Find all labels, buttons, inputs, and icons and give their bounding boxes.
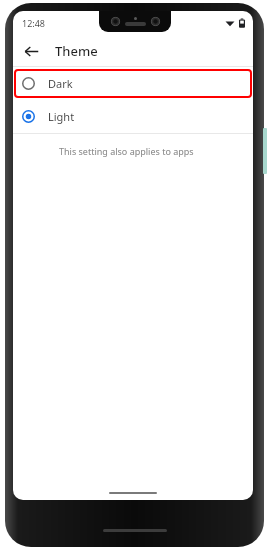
staticText: This setting also applies to apps xyxy=(59,145,194,157)
staticText: 12:48 xyxy=(22,17,46,29)
button[interactable]: Back xyxy=(16,36,46,66)
button[interactable]: Dark xyxy=(14,69,252,98)
staticText: Light xyxy=(48,109,75,124)
staticText: Theme xyxy=(55,42,98,60)
staticText: Dark xyxy=(48,76,73,91)
button[interactable]: Light xyxy=(13,100,253,133)
